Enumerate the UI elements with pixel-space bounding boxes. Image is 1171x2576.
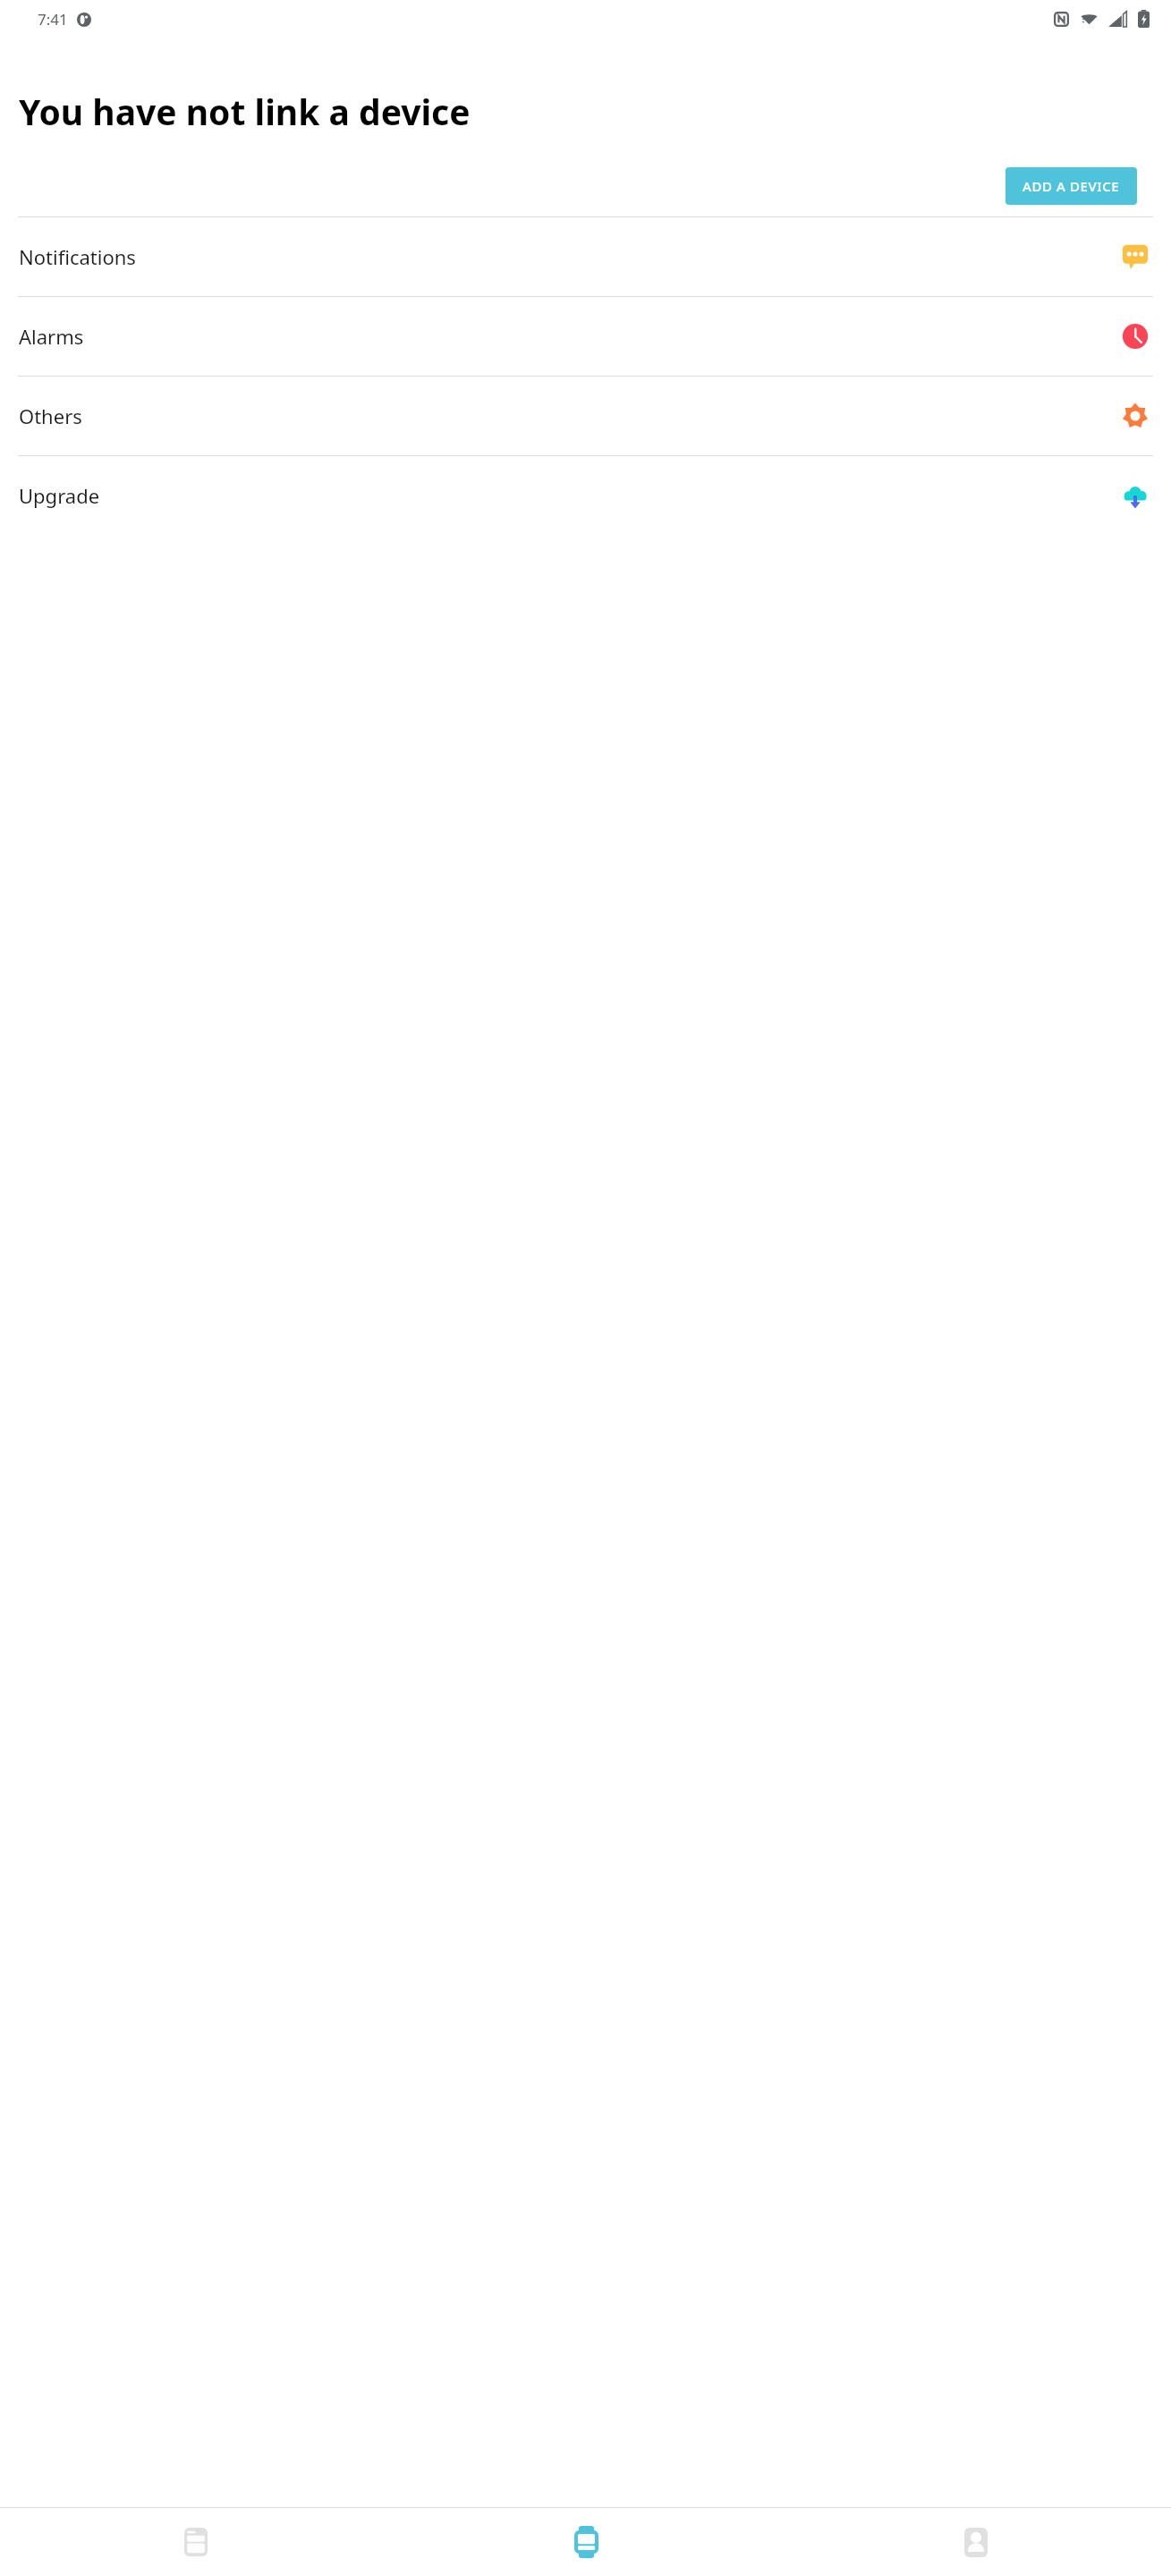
staticText: Alarms [19,323,84,350]
button[interactable]: Watch [391,2508,781,2576]
staticText: You have not link a device [19,88,1090,135]
staticText: 7:41 [38,9,68,30]
staticText: Others [19,402,82,429]
button[interactable]: Upgrade [0,456,1171,535]
button[interactable]: Profile [781,2508,1171,2576]
staticText: Upgrade [19,482,100,509]
staticText: ADD A DEVICE [1023,177,1120,195]
button[interactable]: ADD A DEVICE [1006,167,1137,205]
button[interactable]: Alarms [0,297,1171,376]
button[interactable]: Others [0,377,1171,455]
button[interactable]: Notifications [0,217,1171,296]
staticText: Notifications [19,243,136,270]
button[interactable]: Devices list [0,2508,391,2576]
